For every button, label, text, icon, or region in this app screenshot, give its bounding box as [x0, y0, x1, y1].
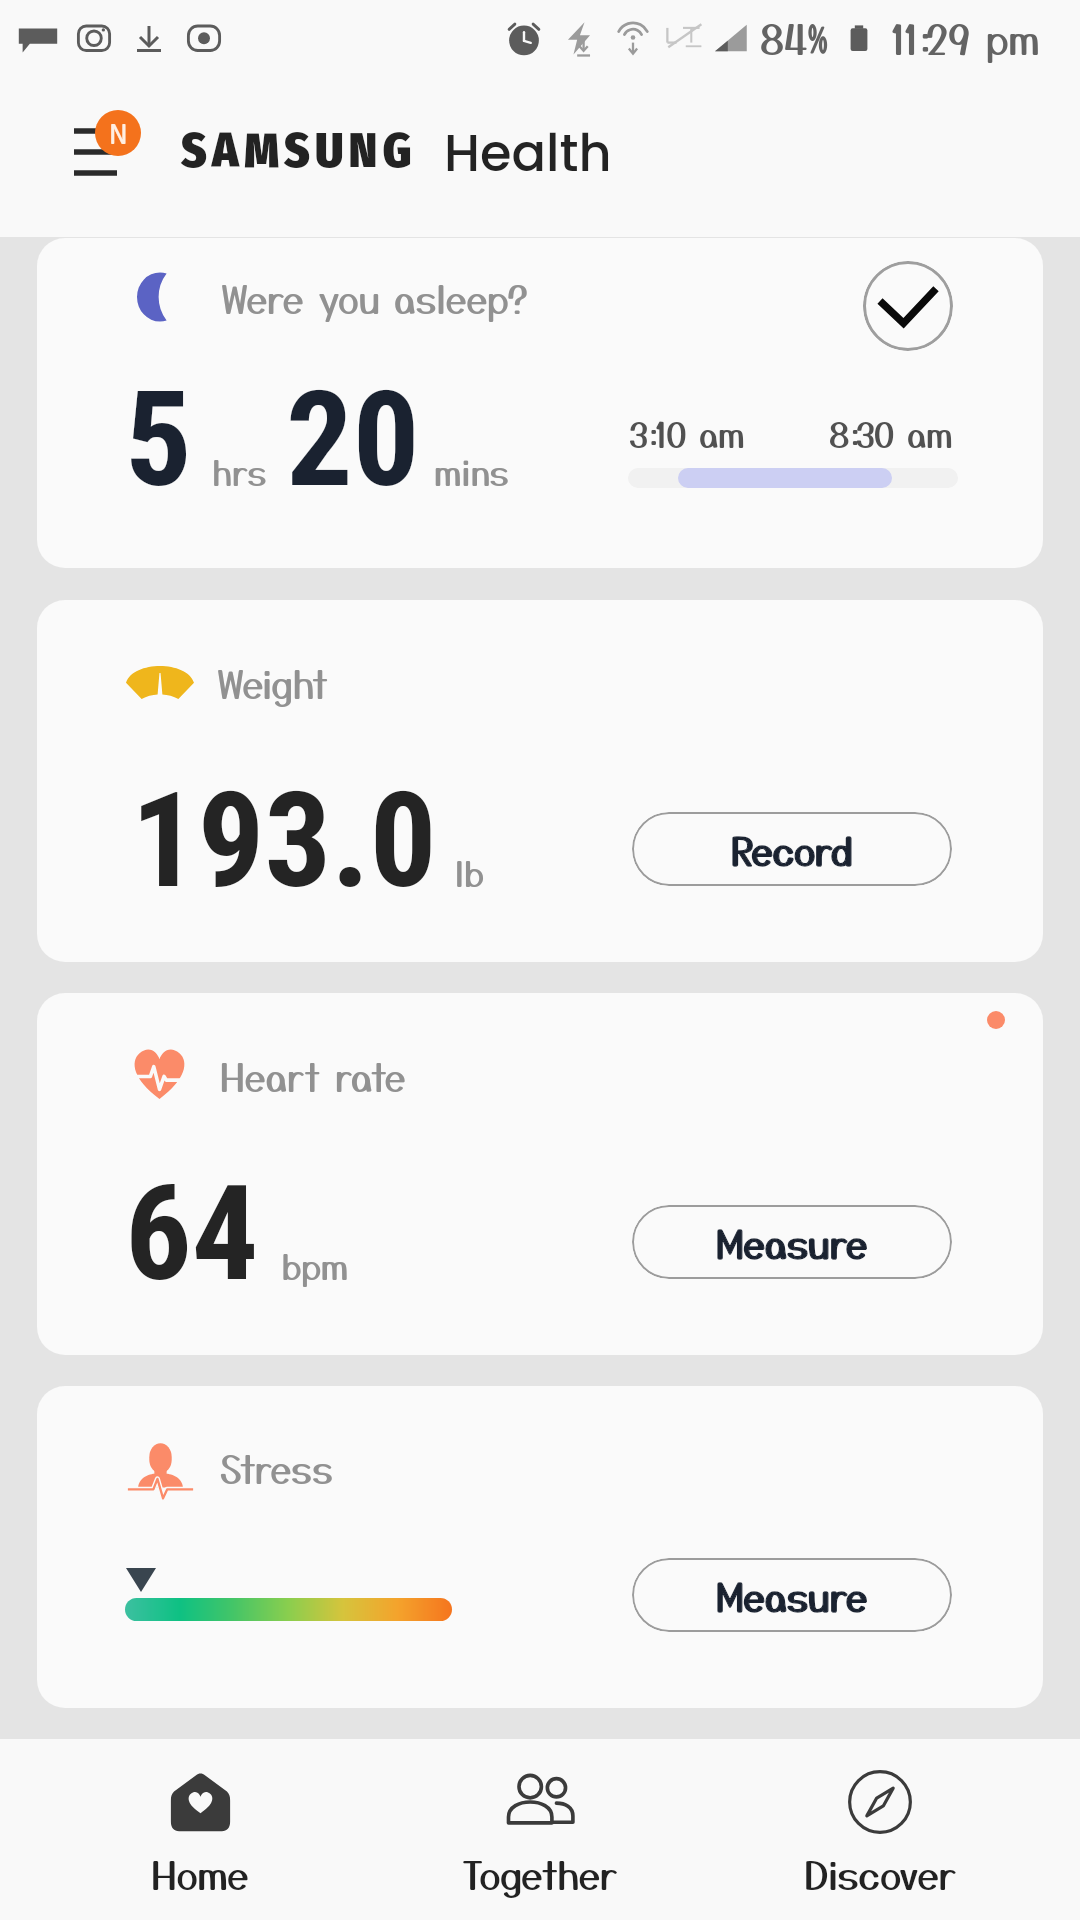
staticText: Health: [444, 117, 612, 188]
button[interactable]: Record: [632, 812, 952, 886]
staticText: SAMSUNG: [181, 122, 418, 180]
button[interactable]: Heart rate: [37, 993, 1043, 1355]
staticText: Weight: [217, 655, 329, 710]
staticText: 3:10 am: [629, 409, 745, 458]
staticText: 5: [125, 363, 192, 518]
button[interactable]: Measure: [632, 1205, 952, 1279]
staticText: 193.0: [131, 764, 437, 919]
staticText: 11:29 pm: [890, 9, 1040, 67]
button[interactable]: Stress: [37, 1386, 1043, 1708]
staticText: 84%: [760, 9, 828, 67]
button[interactable]: Measure: [632, 1558, 952, 1632]
staticText: bpm: [281, 1239, 349, 1290]
button[interactable]: Home: [30, 1739, 370, 1901]
staticText: Heart rate: [220, 1048, 406, 1103]
staticText: 8:30 am: [829, 409, 953, 458]
button[interactable]: Confirm sleep: [863, 261, 953, 351]
button[interactable]: Together: [370, 1739, 710, 1901]
staticText: Were you asleep?: [221, 270, 528, 325]
staticText: 20: [286, 363, 420, 518]
button[interactable]: Were you asleep?: [37, 238, 1043, 568]
staticText: Stress: [220, 1440, 333, 1495]
staticText: Discover: [804, 1845, 957, 1901]
staticText: Record: [731, 821, 854, 877]
staticText: lb: [454, 846, 485, 897]
staticText: Measure: [716, 1567, 868, 1623]
button[interactable]: Menu: [74, 128, 117, 180]
staticText: Measure: [716, 1214, 868, 1270]
staticText: hrs: [212, 445, 267, 496]
staticText: Measure: [716, 1214, 868, 1270]
button[interactable]: Weight: [37, 600, 1043, 962]
staticText: Together: [462, 1845, 618, 1901]
staticText: mins: [434, 445, 509, 496]
staticText: Measure: [716, 1567, 868, 1623]
staticText: Record: [731, 821, 854, 877]
staticText: 64: [125, 1157, 259, 1312]
button[interactable]: Discover: [710, 1739, 1050, 1901]
staticText: N: [110, 114, 127, 152]
staticText: Home: [151, 1845, 249, 1901]
